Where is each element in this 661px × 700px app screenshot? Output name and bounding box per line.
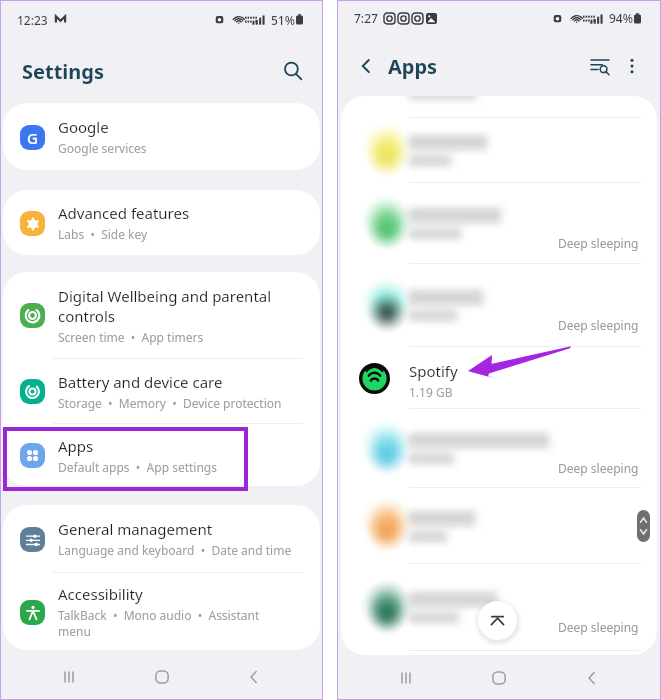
button[interactable] <box>341 96 657 118</box>
button[interactable]: Back <box>353 53 379 79</box>
staticText: Settings <box>22 58 104 85</box>
button[interactable]: Home <box>138 654 186 700</box>
button[interactable]: Battery and device care <box>3 359 320 423</box>
button[interactable]: Spotify <box>341 347 657 409</box>
staticText: 94% <box>609 10 633 26</box>
button[interactable]: Scroll to top <box>478 601 517 640</box>
button[interactable]: Deep sleeping <box>341 264 657 347</box>
button[interactable]: Scrollbar <box>637 510 650 542</box>
staticText: Labs • Side key <box>58 226 148 242</box>
button[interactable]: Recents <box>382 655 430 700</box>
staticText: Google services <box>58 140 147 156</box>
staticText: Deep sleeping <box>558 317 639 333</box>
staticText: Deep sleeping <box>558 460 639 476</box>
staticText: General management <box>58 519 213 539</box>
button[interactable]: G <box>3 103 320 170</box>
staticText: Accessibility <box>58 584 143 604</box>
button[interactable]: Deep sleeping <box>341 183 657 264</box>
button[interactable]: Back <box>568 655 616 700</box>
staticText: Battery and device care <box>58 372 223 392</box>
button[interactable]: Accessibility <box>3 573 320 650</box>
staticText: Advanced features <box>58 203 190 223</box>
staticText: 7:27 <box>354 10 378 26</box>
staticText: Deep sleeping <box>558 235 639 251</box>
button[interactable]: Apps <box>3 424 320 486</box>
button[interactable]: Advanced features <box>3 190 320 255</box>
button[interactable]: Digital Wellbeing and parental controls <box>3 272 320 358</box>
staticText: Screen time • App timers <box>58 329 204 345</box>
staticText: Spotify <box>409 361 458 381</box>
button[interactable] <box>341 118 657 183</box>
staticText: Apps <box>388 53 438 80</box>
button[interactable]: General management <box>3 505 320 572</box>
button[interactable]: Home <box>475 655 523 700</box>
staticText: 12:23 <box>17 12 48 28</box>
button[interactable]: Search <box>278 56 308 86</box>
staticText: Deep sleeping <box>558 619 639 635</box>
staticText: Language and keyboard • Date and time <box>58 542 292 558</box>
staticText: G <box>27 128 38 148</box>
staticText: TalkBack • Mono audio • Assistant menu <box>58 607 294 640</box>
button[interactable]: Deep sleeping <box>341 409 657 488</box>
button[interactable]: Recents <box>45 654 93 700</box>
staticText: Default apps • App settings <box>58 459 217 475</box>
button[interactable]: More options <box>623 57 641 75</box>
staticText: Digital Wellbeing and parental controls <box>58 286 294 326</box>
staticText: 1.19 GB <box>409 384 453 400</box>
button[interactable]: Back <box>230 654 278 700</box>
button[interactable]: Deep sleeping <box>341 564 657 651</box>
staticText: Storage • Memory • Device protection <box>58 395 282 411</box>
staticText: Google <box>58 117 109 137</box>
button[interactable] <box>341 488 657 564</box>
button[interactable]: Sort <box>587 53 613 79</box>
staticText: 51% <box>271 12 295 28</box>
staticText: Apps <box>58 436 94 456</box>
